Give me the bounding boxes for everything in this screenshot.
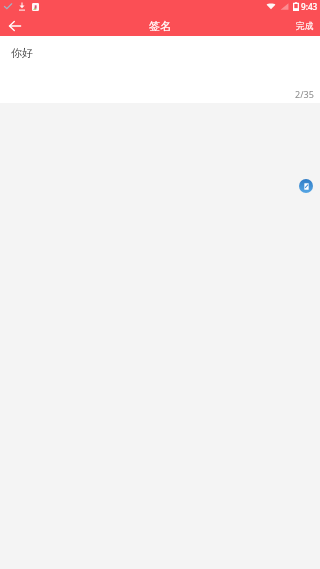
staticText: 你好 xyxy=(11,46,33,60)
staticText: 9:43 xyxy=(301,1,318,12)
staticText: 签名 xyxy=(149,19,171,33)
button[interactable]: Back xyxy=(0,14,29,37)
button[interactable]: Feedback xyxy=(299,179,313,193)
staticText: 完成 xyxy=(296,21,314,32)
button[interactable]: 完成 xyxy=(286,13,320,36)
staticText: 2/35 xyxy=(295,88,314,100)
button[interactable]: Signature text field xyxy=(0,36,320,103)
